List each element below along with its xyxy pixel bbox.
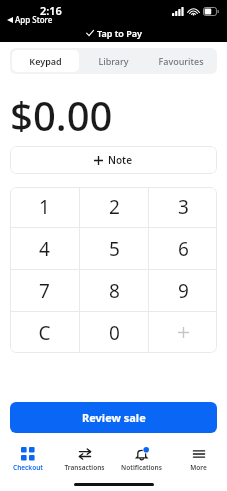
button[interactable]: C: [10, 312, 79, 353]
staticText: Transactions: [64, 463, 105, 472]
button[interactable]: Checkout: [0, 441, 56, 477]
button[interactable]: Note: [10, 146, 217, 174]
staticText: Library: [98, 55, 129, 67]
button[interactable]: 1: [10, 187, 79, 227]
staticText: Favourites: [158, 55, 204, 67]
staticText: 0: [109, 320, 120, 346]
staticText: 2:16: [40, 3, 62, 18]
staticText: 2: [109, 194, 120, 220]
staticText: App Store: [15, 14, 53, 25]
staticText: 4: [39, 236, 50, 262]
button[interactable]: 9: [149, 270, 217, 311]
staticText: C: [38, 320, 51, 346]
staticText: Notifications: [121, 463, 162, 472]
button[interactable]: 8: [80, 270, 148, 311]
button[interactable]: Keypad: [12, 50, 79, 72]
staticText: Review sale: [82, 410, 146, 425]
staticText: 9: [178, 278, 189, 304]
button[interactable]: 2: [80, 187, 148, 227]
button[interactable]: [149, 312, 217, 353]
staticText: More: [190, 463, 207, 472]
staticText: Checkout: [13, 463, 43, 472]
staticText: Note: [108, 153, 133, 167]
staticText: Tap to Pay: [97, 27, 142, 39]
staticText: 5: [109, 236, 120, 262]
staticText: Keypad: [29, 55, 62, 67]
button[interactable]: Notifications: [113, 441, 170, 477]
staticText: $0.00: [10, 88, 113, 132]
button[interactable]: 0: [80, 312, 148, 353]
button[interactable]: 3: [149, 187, 217, 227]
button[interactable]: Review sale: [10, 402, 217, 433]
staticText: 6: [178, 236, 189, 262]
button[interactable]: Library: [79, 50, 147, 72]
button[interactable]: 4: [10, 228, 79, 269]
button[interactable]: More: [170, 441, 227, 477]
staticText: 3: [178, 194, 189, 220]
button[interactable]: 6: [149, 228, 217, 269]
button[interactable]: 5: [80, 228, 148, 269]
button[interactable]: Favourites: [147, 50, 215, 72]
button[interactable]: Transactions: [56, 441, 113, 477]
staticText: 8: [109, 278, 120, 304]
staticText: 7: [39, 278, 50, 304]
staticText: 1: [39, 194, 50, 220]
button[interactable]: 7: [10, 270, 79, 311]
